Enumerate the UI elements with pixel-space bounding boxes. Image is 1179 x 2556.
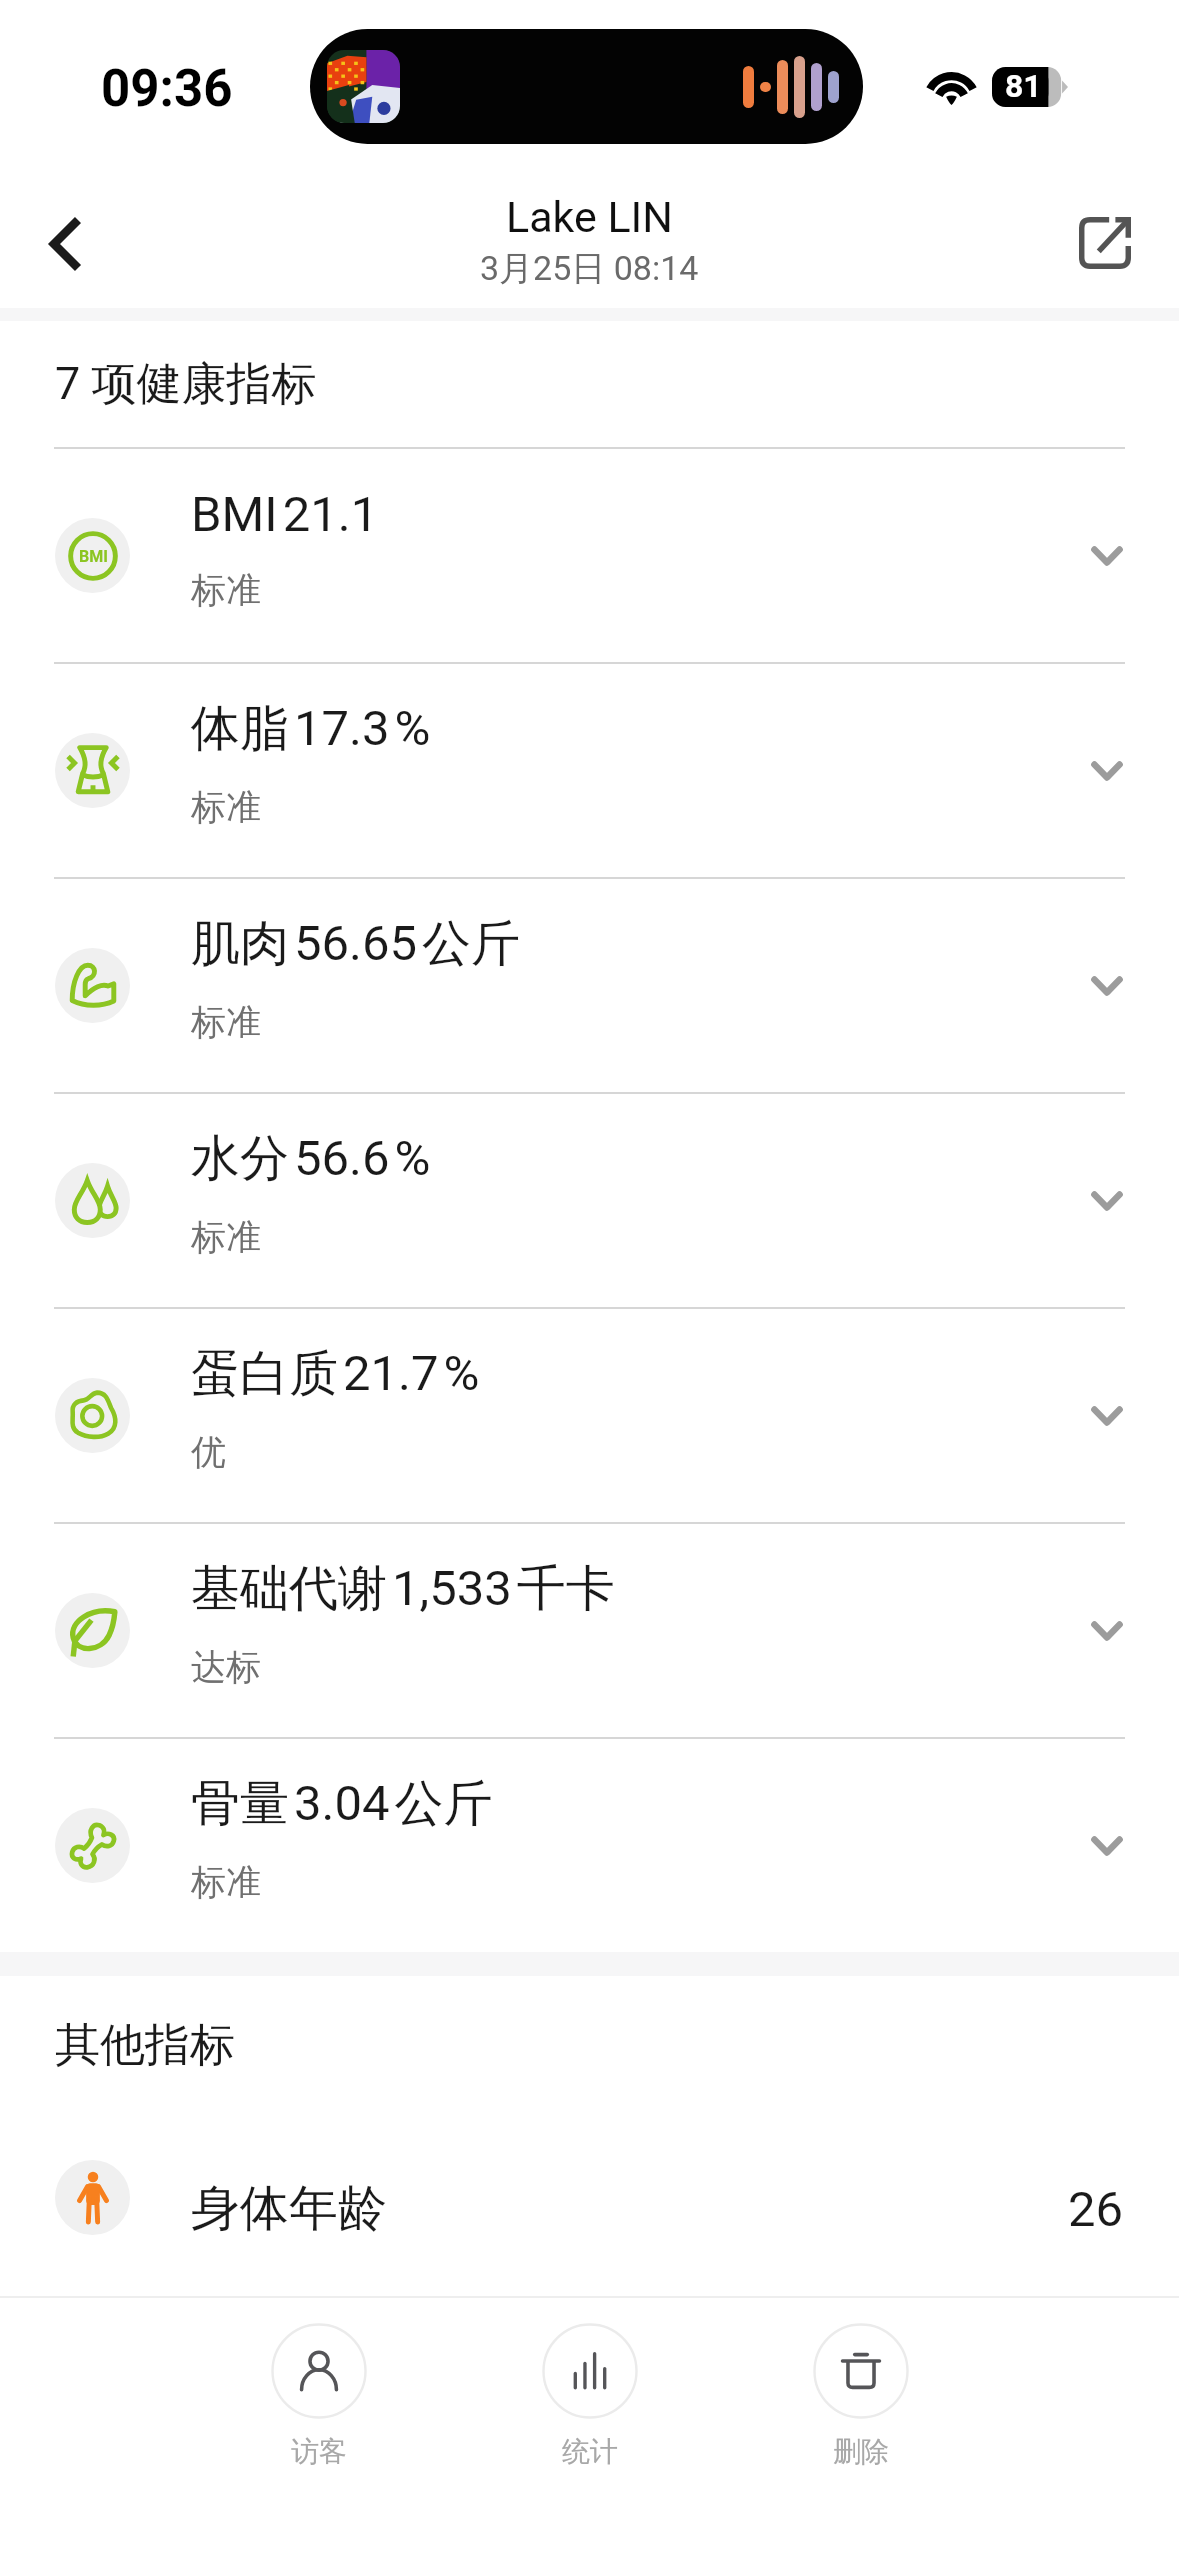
button[interactable]: 肌肉 56.65 公斤 bbox=[0, 877, 1179, 1092]
button[interactable]: 骨量 3.04 公斤 bbox=[0, 1737, 1179, 1952]
staticText: 统计 bbox=[562, 2434, 618, 2469]
staticText: 其他指标 bbox=[55, 2017, 235, 2074]
staticText: 09:36 bbox=[101, 59, 233, 119]
staticText: 标准 bbox=[191, 785, 261, 829]
staticText: 达标 bbox=[191, 1645, 261, 1689]
staticText: BMI 21.1 bbox=[191, 486, 379, 543]
staticText: 基础代谢 1,533 千卡 bbox=[191, 1558, 615, 1620]
button[interactable]: 删除 bbox=[785, 2298, 936, 2469]
staticText: 删除 bbox=[833, 2434, 889, 2469]
staticText: BMI bbox=[79, 547, 108, 566]
button[interactable]: 体脂 17.3 % bbox=[0, 662, 1179, 877]
staticText: 优 bbox=[191, 1430, 226, 1474]
staticText: 蛋白质 21.7 % bbox=[191, 1343, 480, 1405]
staticText: 访客 bbox=[291, 2434, 347, 2469]
button[interactable]: 水分 56.6 % bbox=[0, 1092, 1179, 1307]
button[interactable]: 蛋白质 21.7 % bbox=[0, 1307, 1179, 1522]
staticText: 水分 56.6 % bbox=[191, 1128, 431, 1190]
staticText: 7 项健康指标 bbox=[55, 356, 317, 413]
staticText: Lake LIN bbox=[506, 192, 673, 242]
button[interactable]: 统计 bbox=[514, 2298, 665, 2469]
staticText: 肌肉 56.65 公斤 bbox=[191, 913, 521, 975]
button[interactable]: BMI bbox=[0, 447, 1179, 662]
button[interactable]: Share bbox=[1057, 195, 1153, 291]
staticText: 26 bbox=[1068, 2181, 1124, 2238]
button[interactable]: 访客 bbox=[243, 2298, 394, 2469]
staticText: 标准 bbox=[191, 568, 261, 612]
staticText: 骨量 3.04 公斤 bbox=[191, 1773, 493, 1835]
staticText: 3月25日 08:14 bbox=[480, 247, 699, 290]
button[interactable]: 基础代谢 1,533 千卡 bbox=[0, 1522, 1179, 1737]
staticText: 标准 bbox=[191, 1215, 261, 1259]
staticText: 标准 bbox=[191, 1000, 261, 1044]
staticText: 标准 bbox=[191, 1860, 261, 1904]
button[interactable]: 身体年龄 bbox=[0, 2102, 1179, 2292]
staticText: 体脂 17.3 % bbox=[191, 698, 431, 760]
staticText: 81 bbox=[1005, 67, 1042, 105]
button[interactable]: Back bbox=[14, 192, 118, 296]
staticText: 身体年龄 bbox=[191, 2178, 1068, 2240]
